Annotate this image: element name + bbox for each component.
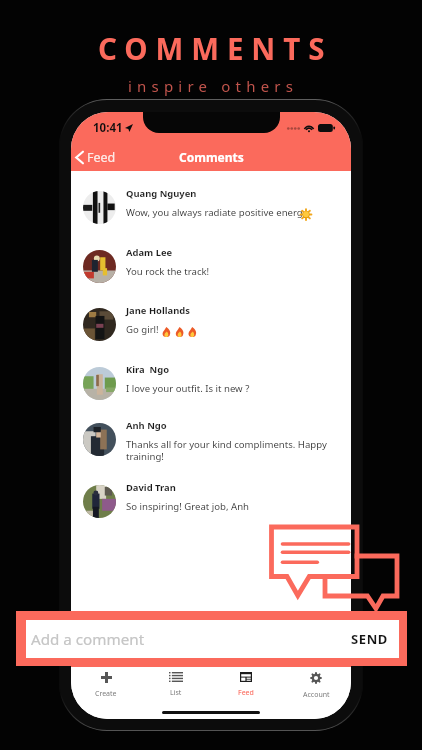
staticText: Kira Ngo: [126, 363, 169, 376]
staticText: 10:41: [93, 120, 123, 136]
button[interactable]: Anh Ngo: [71, 419, 351, 462]
staticText: List: [170, 688, 182, 698]
staticText: Wow, you always radiate positive energy: [126, 206, 311, 219]
button[interactable]: Create: [71, 670, 141, 701]
staticText: Account: [303, 690, 330, 700]
staticText: So inspiring! Great job, Anh: [126, 500, 250, 513]
button[interactable]: Jane Hollands: [71, 304, 351, 337]
staticText: Add a comment: [31, 629, 145, 650]
button[interactable]: Kira Ngo: [71, 363, 351, 396]
staticText: SEND: [351, 630, 388, 648]
staticText: Anh Ngo: [126, 419, 167, 432]
staticText: Jane Hollands: [126, 304, 190, 317]
staticText: Adam Lee: [126, 246, 173, 259]
other: Feed: [240, 672, 252, 682]
staticText: Thanks all for your kind compliments. Ha…: [126, 438, 347, 462]
button[interactable]: Adam Lee: [71, 246, 351, 279]
staticText: COMMENTS: [98, 28, 333, 68]
staticText: Go girl!: [126, 323, 162, 336]
staticText: Comments: [179, 149, 244, 165]
staticText: Quang Nguyen: [126, 187, 197, 200]
button[interactable]: List: [141, 670, 211, 700]
staticText: David Tran: [126, 481, 176, 494]
button[interactable]: Quang Nguyen: [71, 187, 351, 220]
button[interactable]: Feed: [71, 146, 124, 169]
button[interactable]: Account: [281, 670, 351, 702]
other: Create: [101, 672, 112, 683]
staticText: You rock the track!: [126, 265, 210, 278]
other: List: [169, 672, 183, 682]
staticText: I love your outfit. Is it new ?: [126, 382, 250, 395]
staticText: Feed: [87, 149, 116, 166]
button[interactable]: Add a comment: [16, 611, 407, 666]
staticText: Feed: [238, 688, 254, 698]
button[interactable]: Feed: [211, 670, 281, 700]
staticText: Create: [95, 689, 117, 699]
staticText: inspire others: [128, 76, 299, 96]
other: Account: [310, 672, 322, 684]
button[interactable]: David Tran: [71, 481, 351, 514]
